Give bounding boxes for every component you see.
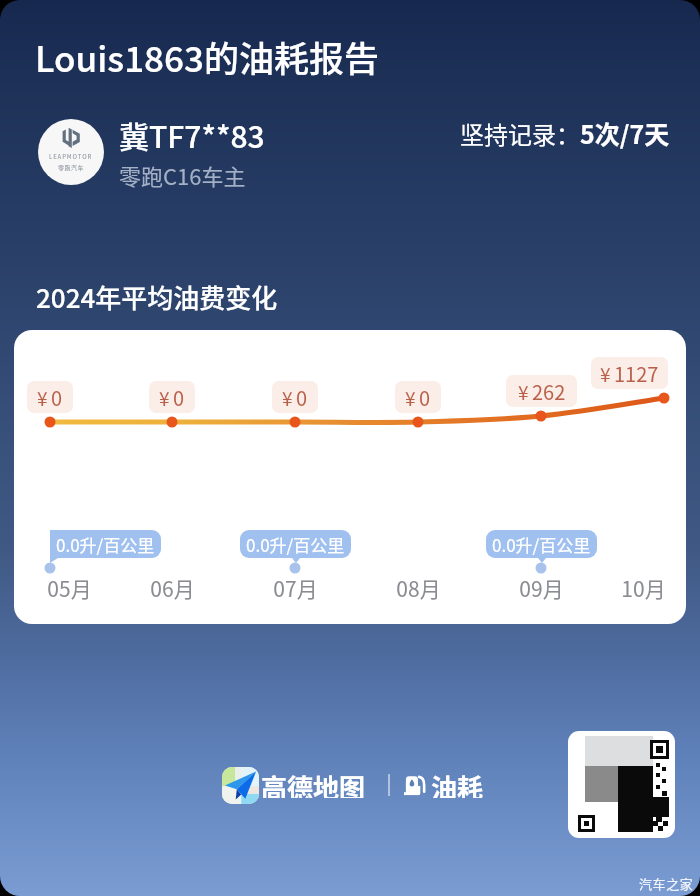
button[interactable]: ¥	[14, 330, 686, 624]
staticText: Louis1863的油耗报告	[35, 31, 379, 82]
staticText: 08月	[396, 573, 441, 603]
staticText: 汽车之家	[639, 874, 694, 893]
staticText: ¥	[37, 384, 48, 412]
staticText: 2024年平均油费变化	[36, 278, 278, 316]
button[interactable]: ¥	[149, 381, 195, 413]
staticText: 油耗	[431, 768, 484, 798]
staticText: 262	[532, 377, 566, 406]
other: Fuel consumption	[404, 773, 428, 797]
staticText: 高德地图	[261, 768, 366, 798]
staticText: LEAPMOTOR	[49, 152, 93, 161]
staticText: 07月	[273, 573, 318, 603]
staticText: 0.0升/百公里	[246, 532, 345, 557]
staticText: 06月	[150, 573, 195, 603]
button[interactable]: ¥	[506, 375, 577, 407]
staticText: ¥	[282, 384, 293, 412]
staticText: ¥	[600, 360, 611, 388]
button[interactable]: Leapmotor brand	[38, 119, 104, 185]
staticText: 0	[419, 383, 431, 412]
staticText: 05月	[47, 573, 92, 603]
button[interactable]: Amap	[222, 767, 259, 804]
staticText: 零跑汽车	[58, 163, 85, 172]
staticText: ¥	[159, 384, 170, 412]
button[interactable]: ¥	[272, 381, 318, 413]
staticText: 0	[296, 383, 308, 412]
staticText: 5次/7天	[580, 115, 670, 151]
staticText: 0.0升/百公里	[492, 532, 591, 557]
staticText: 0	[173, 383, 185, 412]
staticText: 冀TF7**83	[119, 113, 265, 156]
staticText: 0	[51, 383, 63, 412]
staticText: ¥	[518, 378, 529, 406]
staticText: 1127	[614, 359, 659, 388]
button[interactable]: ¥	[395, 381, 441, 413]
staticText: ¥	[405, 384, 416, 412]
staticText: 10月	[621, 573, 666, 603]
staticText: 零跑C16车主	[119, 159, 246, 191]
button[interactable]: QR code	[568, 731, 675, 838]
staticText: 0.0升/百公里	[56, 532, 155, 557]
button[interactable]: ¥	[27, 381, 73, 413]
staticText: 09月	[519, 573, 564, 603]
staticText: 坚持记录：	[460, 116, 580, 151]
button[interactable]: ¥	[591, 357, 668, 389]
